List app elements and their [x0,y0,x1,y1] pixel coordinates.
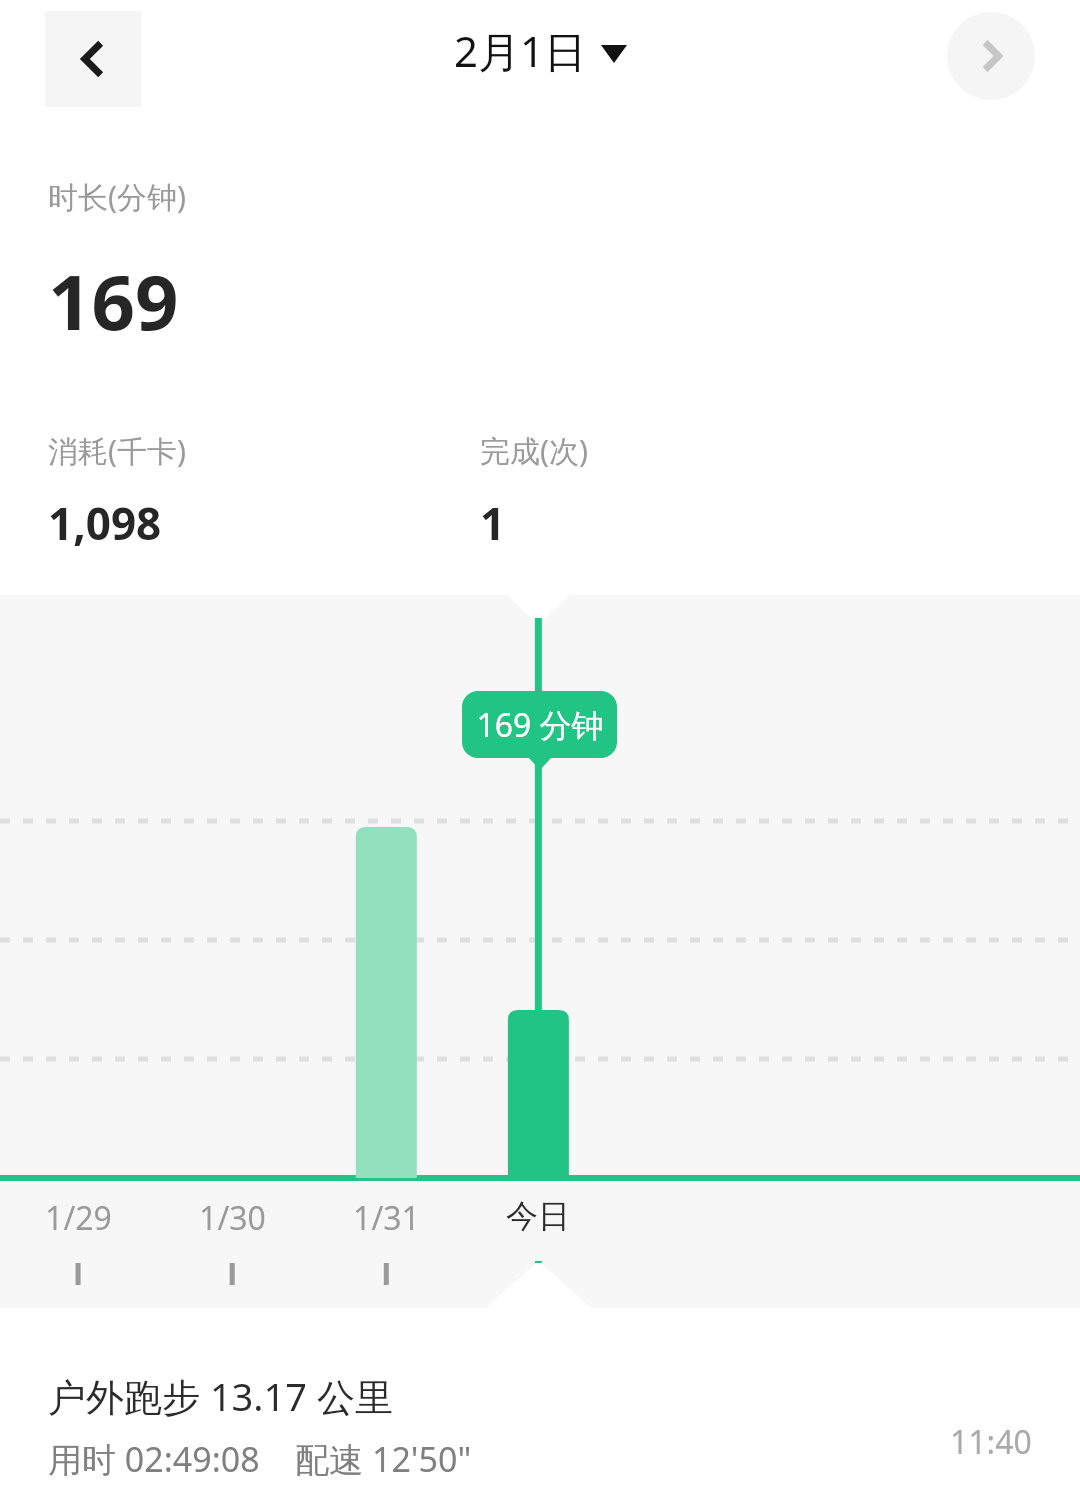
button[interactable]: 1/30 [177,1196,287,1240]
staticText: 完成(次) [480,430,588,471]
staticText: 1/30 [199,1196,266,1240]
staticText: 1/31 [353,1196,420,1240]
staticText: 时长(分钟) [48,176,186,217]
button[interactable]: 2月1日 [454,22,627,79]
button[interactable]: 1/29 [23,1196,133,1240]
staticText: 户外跑步 13.17 公里 [48,1370,393,1422]
staticText: 今日 [506,1196,570,1236]
staticText: 11:40 [950,1420,1032,1464]
button[interactable]: 户外跑步 13.17 公里 [0,1308,1080,1486]
staticText: 169 分钟 [476,703,604,747]
button[interactable]: Back [45,11,141,107]
staticText: 1/29 [45,1196,112,1240]
staticText: 1,098 [48,493,162,553]
staticText: 用时 02:49:08 配速 12'50" [48,1436,472,1482]
button[interactable]: 今日 [483,1196,593,1236]
staticText: 2月1日 [454,22,587,79]
button[interactable]: Next day [947,12,1035,100]
staticText: 169 [48,249,179,353]
staticText: 1 [480,493,506,553]
staticText: 消耗(千卡) [48,430,186,471]
button[interactable]: 1/31 [331,1196,441,1240]
button[interactable]: 169 分钟 [462,691,617,758]
